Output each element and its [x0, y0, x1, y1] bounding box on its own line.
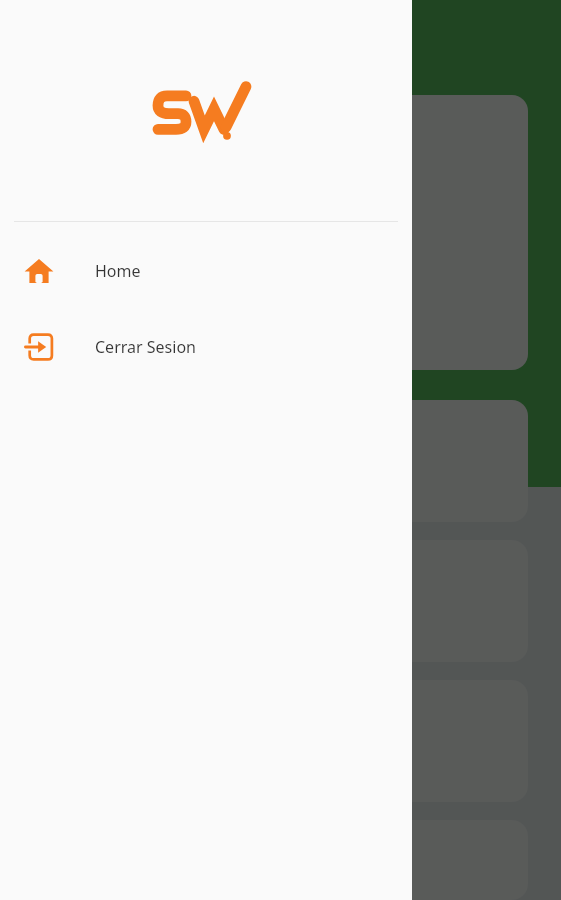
other: Home — [24, 256, 54, 286]
staticText: Home — [95, 260, 141, 282]
other: Cerrar Sesion — [24, 332, 54, 362]
button[interactable]: Home — [0, 233, 412, 309]
button[interactable]: Online — [34, 820, 528, 900]
staticText: 16:41 — [121, 331, 157, 351]
button[interactable]: Online — [34, 680, 528, 802]
staticText: 16:38 — [34, 331, 64, 351]
staticText: 95 — [40, 220, 53, 235]
button[interactable]: Cerrar Sesion — [0, 309, 412, 385]
staticText: 16:42 — [152, 331, 188, 351]
button[interactable]: Dispositivo — [34, 540, 528, 662]
button[interactable]: Dispositivo — [34, 400, 528, 522]
staticText: Cerrar Sesion — [95, 336, 196, 358]
staticText: 16:40 — [90, 331, 126, 351]
